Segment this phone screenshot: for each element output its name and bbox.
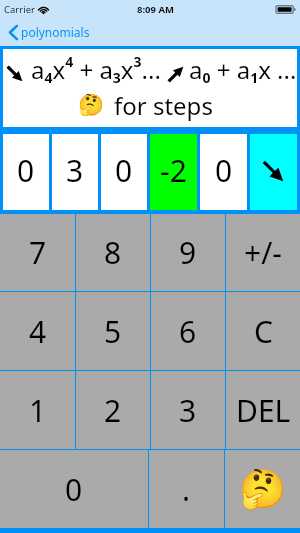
staticText: polynomials bbox=[21, 24, 90, 40]
staticText: 0 bbox=[115, 150, 133, 191]
staticText: 🤔 bbox=[239, 467, 287, 512]
staticText: for steps bbox=[114, 89, 213, 122]
button[interactable]: 7 bbox=[0, 214, 75, 291]
button[interactable]: 9 bbox=[151, 214, 225, 291]
staticText: 4 bbox=[29, 311, 47, 352]
button[interactable]: 1 bbox=[0, 371, 75, 449]
button[interactable]: DEL bbox=[226, 371, 300, 449]
staticText: 9 bbox=[179, 232, 197, 273]
other: Shift right bbox=[263, 161, 284, 182]
button[interactable]: 🤔 bbox=[0, 84, 292, 126]
button[interactable]: 0 bbox=[200, 134, 247, 210]
staticText: 2 bbox=[104, 390, 122, 431]
staticText: 1 bbox=[29, 390, 47, 431]
staticText: DEL bbox=[236, 390, 291, 431]
button[interactable]: 8 bbox=[76, 214, 150, 291]
staticText: 🤔 bbox=[78, 93, 105, 118]
staticText: 0 bbox=[65, 469, 83, 510]
staticText: 8 bbox=[104, 232, 122, 273]
staticText: a4x4 + a3x3... bbox=[31, 52, 161, 88]
staticText: 0 bbox=[215, 150, 233, 191]
button[interactable]: 4 bbox=[0, 292, 75, 370]
button[interactable]: +/- bbox=[226, 214, 300, 291]
staticText: 6 bbox=[179, 311, 197, 352]
staticText: 0 bbox=[17, 150, 35, 191]
button[interactable]: 0 bbox=[0, 450, 148, 528]
button[interactable]: -2 bbox=[150, 134, 197, 210]
staticText: C bbox=[254, 311, 273, 352]
staticText: Carrier bbox=[4, 3, 35, 16]
button[interactable]: a0 + a1x ... bbox=[168, 52, 297, 88]
button[interactable]: 5 bbox=[76, 292, 150, 370]
staticText: 3 bbox=[179, 390, 197, 431]
button[interactable]: Show steps bbox=[225, 450, 300, 528]
button[interactable]: . bbox=[149, 450, 224, 528]
staticText: 8:09 AM bbox=[137, 3, 174, 16]
button[interactable]: Shift right bbox=[250, 134, 297, 210]
button[interactable]: 6 bbox=[151, 292, 225, 370]
staticText: 5 bbox=[104, 311, 122, 352]
staticText: a0 + a1x ... bbox=[189, 53, 297, 87]
button[interactable]: 3 bbox=[52, 134, 98, 210]
button[interactable]: C bbox=[226, 292, 300, 370]
staticText: 3 bbox=[66, 150, 84, 191]
staticText: -2 bbox=[160, 150, 187, 191]
button[interactable]: 0 bbox=[101, 134, 147, 210]
button[interactable]: polynomials bbox=[0, 22, 104, 46]
button[interactable]: a4x4 + a3x3... bbox=[7, 52, 161, 88]
staticText: 7 bbox=[29, 232, 47, 273]
staticText: +/- bbox=[244, 232, 282, 273]
staticText: . bbox=[182, 469, 191, 510]
button[interactable]: 0 bbox=[3, 134, 49, 210]
button[interactable]: 3 bbox=[151, 371, 225, 449]
button[interactable]: 2 bbox=[76, 371, 150, 449]
